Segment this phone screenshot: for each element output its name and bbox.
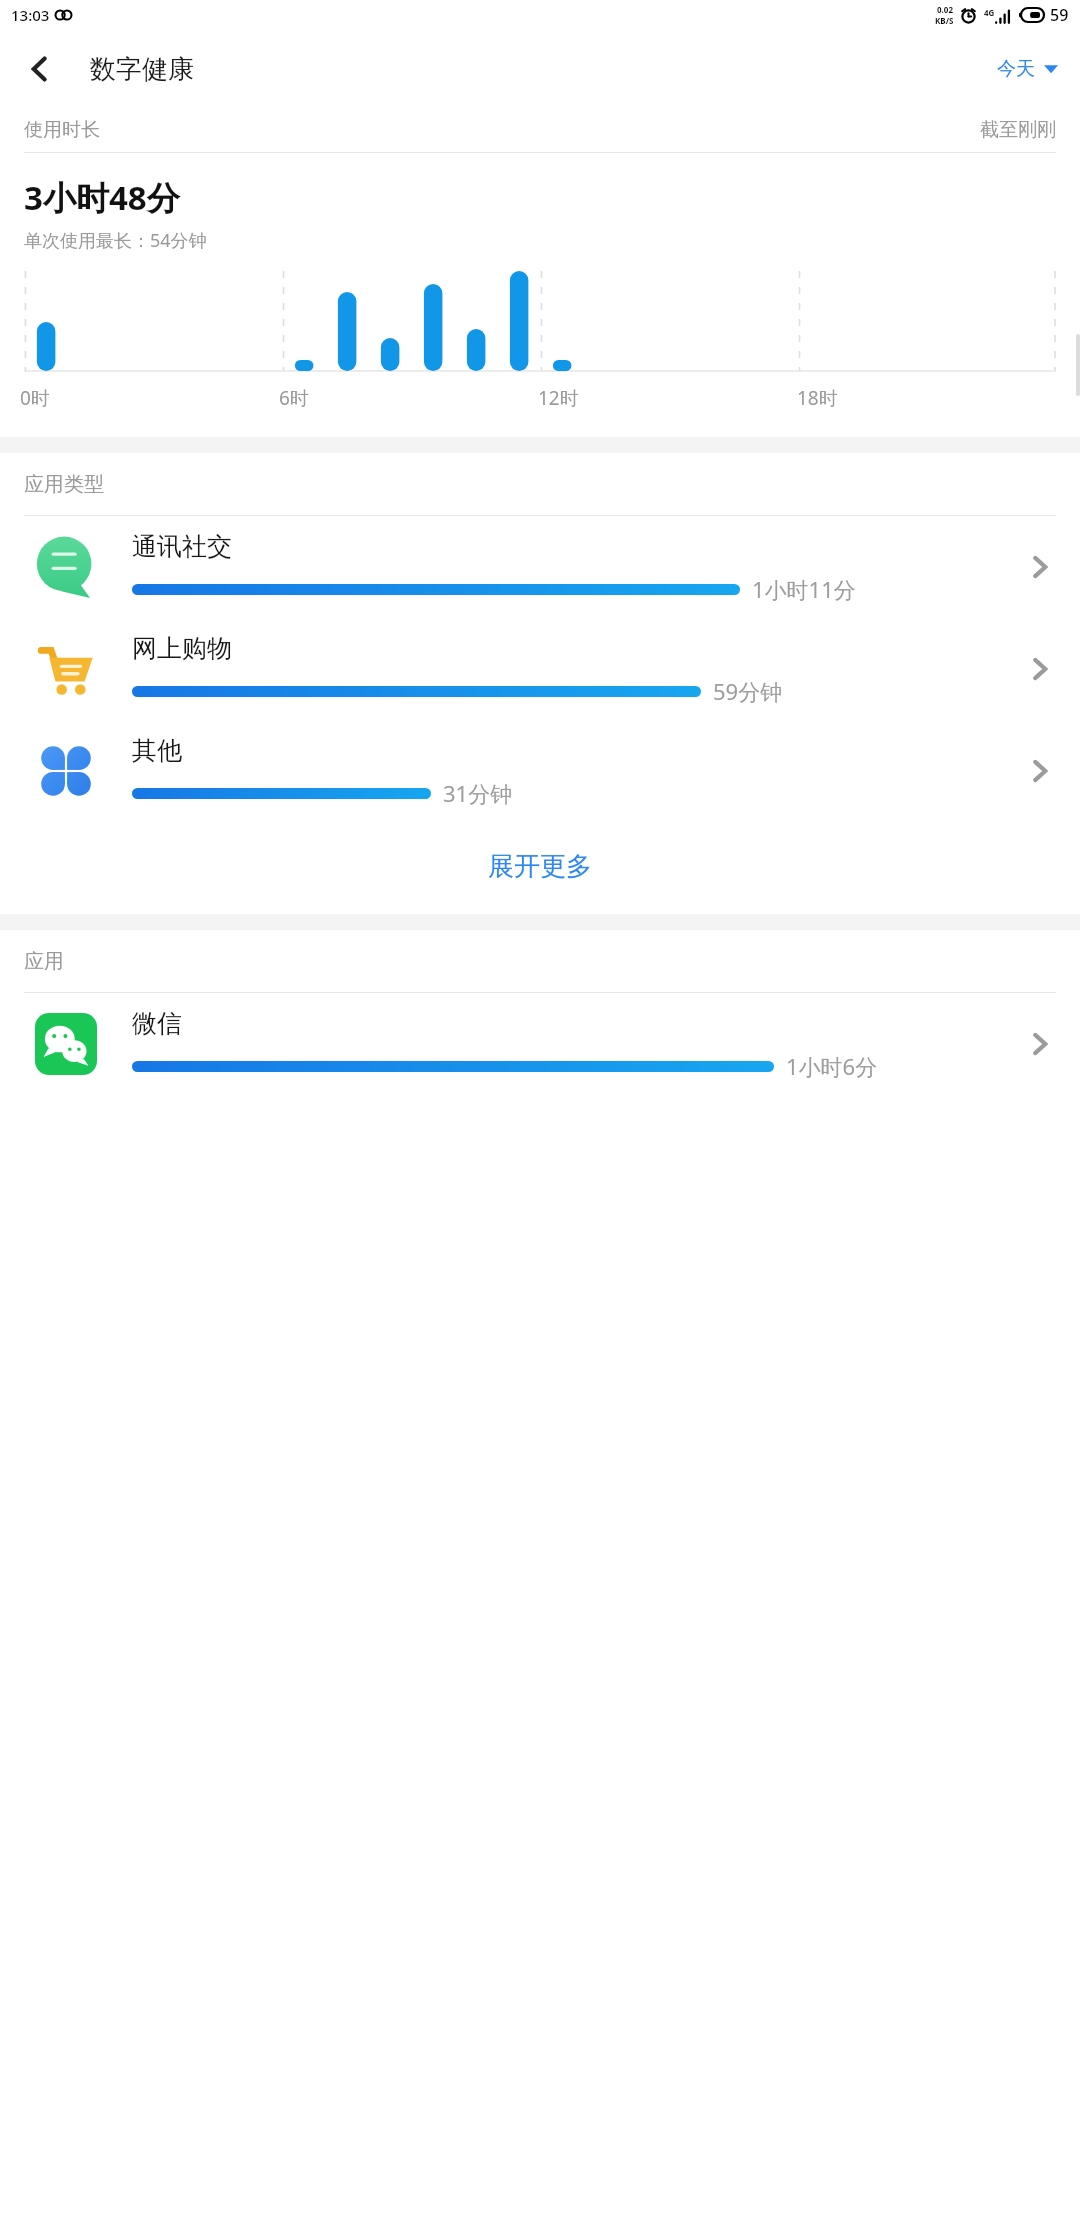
staticText: 1小时6分 <box>786 1051 878 1081</box>
staticText: 31分钟 <box>443 778 513 808</box>
staticText: 其他 <box>132 735 182 766</box>
button[interactable]: 展开更多 <box>0 822 1080 914</box>
staticText: 59分钟 <box>713 676 783 706</box>
staticText: 应用 <box>24 949 64 974</box>
staticText: 4G <box>984 7 995 18</box>
staticText: 应用类型 <box>24 472 104 497</box>
staticText: 网上购物 <box>132 633 232 664</box>
staticText: 59 <box>1050 4 1069 26</box>
button[interactable]: 通讯社交 <box>0 516 1080 618</box>
button[interactable]: 其他 <box>0 720 1080 822</box>
staticText: 12时 <box>538 385 579 411</box>
staticText: 微信 <box>132 1008 182 1039</box>
staticText: 0.02 <box>937 4 953 15</box>
button[interactable]: 今天 <box>989 49 1066 89</box>
staticText: 数字健康 <box>90 53 194 86</box>
staticText: 1小时11分 <box>752 574 856 604</box>
staticText: 截至刚刚 <box>980 118 1056 142</box>
staticText: 今天 <box>997 57 1035 81</box>
staticText: 6时 <box>279 385 309 411</box>
button[interactable]: 微信 <box>0 993 1080 1095</box>
staticText: 0时 <box>20 385 50 411</box>
staticText: 18时 <box>797 385 838 411</box>
staticText: 通讯社交 <box>132 531 232 562</box>
staticText: 3小时48分 <box>24 175 180 220</box>
button[interactable]: 网上购物 <box>0 618 1080 720</box>
staticText: 单次使用最长：54分钟 <box>24 228 207 253</box>
staticText: 展开更多 <box>488 850 592 883</box>
staticText: 使用时长 <box>24 118 100 142</box>
staticText: 13:03 <box>11 5 50 25</box>
staticText: KB/S <box>935 15 954 26</box>
button[interactable]: Back <box>12 41 68 97</box>
